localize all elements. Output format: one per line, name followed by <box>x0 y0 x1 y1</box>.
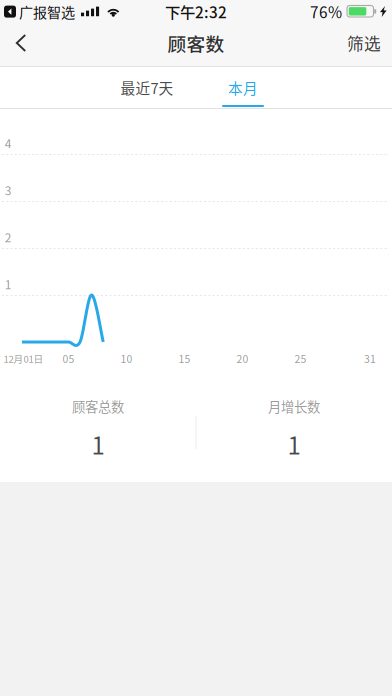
staticText: 下午2:32 <box>165 0 227 23</box>
staticText: 2 <box>5 228 12 246</box>
staticText: 76% <box>310 0 342 23</box>
staticText: 本月 <box>228 77 258 98</box>
staticText: 月增长数 <box>268 396 320 416</box>
staticText: 顾客数 <box>167 29 224 56</box>
staticText: 12月01日 <box>4 351 44 365</box>
staticText: 15 <box>178 351 190 366</box>
staticText: 3 <box>5 181 12 199</box>
button[interactable]: Back <box>0 20 42 66</box>
staticText: 1 <box>91 427 104 462</box>
staticText: 广报智选 <box>19 1 75 22</box>
staticText: 20 <box>236 351 248 366</box>
button[interactable]: 最近7天 <box>99 67 195 108</box>
staticText: 05 <box>62 351 74 366</box>
button[interactable]: 筛选 <box>336 20 392 66</box>
button[interactable]: 本月 <box>195 67 291 108</box>
staticText: 1 <box>287 427 300 462</box>
staticText: 25 <box>294 351 306 366</box>
staticText: 顾客总数 <box>72 396 124 416</box>
staticText: 4 <box>5 134 12 152</box>
staticText: 1 <box>5 275 12 293</box>
staticText: 10 <box>120 351 132 366</box>
staticText: 筛选 <box>347 31 381 55</box>
staticText: 31 <box>364 351 376 366</box>
staticText: 最近7天 <box>120 77 173 98</box>
